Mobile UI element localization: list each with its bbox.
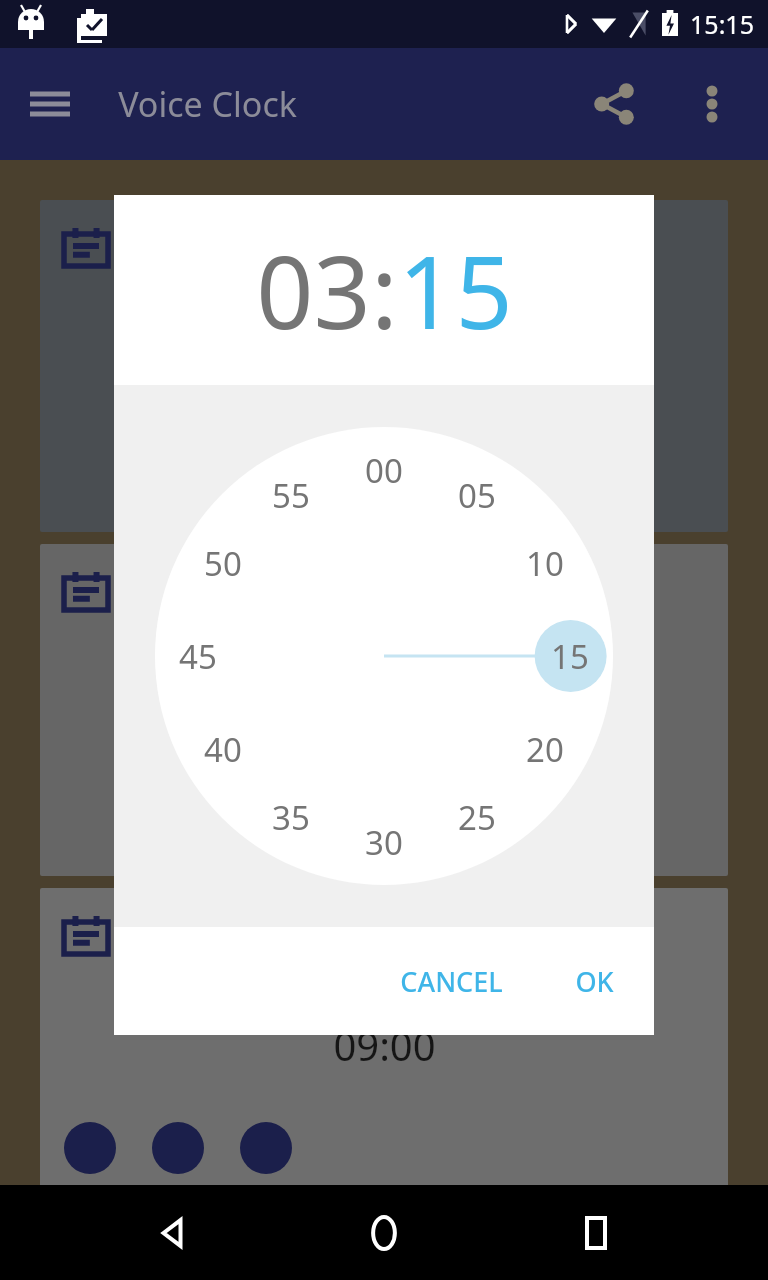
staticText: 10 — [526, 541, 564, 586]
button[interactable]: More options — [684, 76, 740, 132]
button[interactable]: 15 — [538, 624, 602, 688]
button[interactable]: Edit — [40, 200, 728, 532]
staticText: 15:15 — [690, 7, 754, 41]
staticText: 45 — [179, 634, 217, 679]
staticText: 09:00 — [333, 1018, 436, 1072]
button[interactable]: Edit — [40, 544, 728, 876]
button[interactable]: 03 — [256, 222, 371, 358]
button[interactable]: 55 — [259, 463, 323, 527]
button[interactable]: 45 — [166, 624, 230, 688]
button[interactable]: 15 — [398, 222, 513, 358]
button[interactable]: Action 1 — [152, 1122, 204, 1174]
button[interactable]: 05 — [445, 463, 509, 527]
button[interactable]: Action 0 — [64, 1122, 116, 1174]
staticText: 35 — [272, 795, 310, 840]
staticText: Voice Clock — [118, 81, 297, 127]
button[interactable]: Back — [132, 1193, 212, 1273]
button[interactable]: Home — [344, 1193, 424, 1273]
button[interactable]: Action 2 — [240, 1122, 292, 1174]
button[interactable]: 35 — [259, 785, 323, 849]
staticText: 20 — [526, 727, 564, 772]
button[interactable]: Share — [582, 72, 646, 136]
button[interactable]: 50 — [191, 531, 255, 595]
staticText: 25 — [458, 795, 496, 840]
button[interactable]: Recents — [556, 1193, 636, 1273]
staticText: 50 — [204, 541, 242, 586]
button[interactable]: Navigation menu — [22, 76, 78, 132]
staticText: CANCEL — [400, 963, 503, 1000]
button[interactable]: 09:00 — [40, 888, 728, 1188]
staticText: 30 — [365, 820, 403, 865]
button[interactable]: 40 — [191, 717, 255, 781]
button[interactable]: 25 — [445, 785, 509, 849]
staticText: 03 — [256, 222, 371, 358]
staticText: 55 — [272, 473, 310, 518]
staticText: 40 — [204, 727, 242, 772]
button[interactable]: 20 — [513, 717, 577, 781]
staticText: : — [371, 222, 398, 358]
staticText: 00 — [365, 448, 403, 493]
button[interactable]: 30 — [352, 810, 416, 874]
button[interactable]: CANCEL — [384, 951, 519, 1012]
button[interactable]: OK — [559, 951, 630, 1012]
staticText: 05 — [458, 473, 496, 518]
staticText: 15 — [551, 634, 589, 679]
button[interactable]: 10 — [513, 531, 577, 595]
staticText: 15 — [398, 222, 513, 358]
staticText: OK — [575, 963, 614, 1000]
button[interactable]: 00 — [352, 438, 416, 502]
